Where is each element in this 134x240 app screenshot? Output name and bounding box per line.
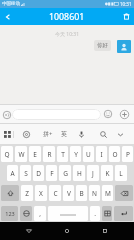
staticText: 1008601 [49, 11, 85, 23]
staticText: 你好 [97, 42, 108, 49]
button[interactable]: Delete [118, 8, 134, 25]
staticText: W [18, 150, 25, 159]
staticText: P [126, 150, 130, 159]
staticText: Q [4, 150, 10, 159]
button[interactable]: A [7, 165, 18, 181]
button[interactable]: More [118, 108, 131, 121]
staticText: 10:31 [120, 1, 132, 7]
button[interactable]: Symbols [102, 206, 112, 221]
button[interactable]: U [83, 146, 94, 162]
button[interactable]: E [29, 146, 41, 162]
button[interactable] [12, 109, 101, 120]
button[interactable]: 拼+ [40, 127, 56, 141]
staticText: Z [25, 189, 29, 198]
button[interactable]: grid [1, 128, 13, 140]
button[interactable]: 英 [58, 127, 70, 141]
staticText: 英 [61, 130, 67, 138]
button[interactable]: R [43, 146, 55, 162]
staticText: 中国移动 [2, 1, 20, 7]
button[interactable]: 123 [1, 206, 18, 221]
staticText: . [94, 209, 96, 218]
staticText: D [36, 169, 41, 178]
button[interactable]: Shift [1, 185, 19, 201]
button[interactable]: Recents [96, 222, 114, 240]
staticText: G [63, 169, 68, 178]
button[interactable]: . [90, 206, 100, 221]
button[interactable]: Voice input [1, 109, 12, 120]
staticText: V [67, 189, 71, 198]
button[interactable]: O [109, 146, 120, 162]
staticText: 今天 10:31 [55, 31, 80, 38]
button[interactable]: M [102, 185, 113, 201]
button[interactable]: Q [1, 146, 13, 162]
button[interactable]: W [15, 146, 27, 162]
button[interactable]: V [63, 185, 74, 201]
button[interactable]: down [114, 128, 126, 140]
staticText: U [86, 150, 91, 159]
button[interactable]: Emoji [102, 108, 114, 120]
staticText: B [79, 189, 84, 198]
staticText: E [33, 150, 37, 159]
button[interactable]: I [96, 146, 107, 162]
staticText: N [92, 189, 97, 198]
button[interactable]: L [115, 165, 127, 181]
staticText: , [39, 209, 41, 218]
button[interactable]: settings [20, 128, 32, 140]
staticText: J [92, 169, 94, 178]
button[interactable]: K [101, 165, 113, 181]
button[interactable]: H [73, 165, 85, 181]
button[interactable]: D [33, 165, 44, 181]
staticText: A [10, 169, 15, 178]
button[interactable]: B [76, 185, 87, 201]
button[interactable]: Enter [114, 206, 133, 221]
staticText: K [105, 169, 110, 178]
staticText: Y [74, 150, 78, 159]
button[interactable]: Y [70, 146, 81, 162]
button[interactable]: X [35, 185, 47, 201]
staticText: O [112, 150, 118, 159]
staticText: M [105, 189, 111, 198]
button[interactable]: Back [0, 8, 16, 25]
staticText: T [61, 150, 65, 159]
staticText: X [39, 189, 43, 198]
button[interactable]: P [122, 146, 133, 162]
button[interactable]: search [97, 128, 109, 140]
button[interactable]: T [57, 146, 68, 162]
button[interactable]: Globe [20, 206, 32, 221]
button[interactable]: S [20, 165, 31, 181]
button[interactable]: Home [58, 222, 76, 240]
staticText: S [24, 169, 28, 178]
staticText: L [119, 169, 123, 178]
button[interactable]: Z [21, 185, 33, 201]
button[interactable]: mic [75, 128, 87, 140]
button[interactable] [48, 206, 88, 221]
button[interactable]: Back [20, 222, 38, 240]
button[interactable]: , [34, 206, 46, 221]
button[interactable]: N [89, 185, 100, 201]
button[interactable]: Backspace [115, 185, 133, 201]
button[interactable]: C [49, 185, 61, 201]
staticText: R [47, 150, 52, 159]
staticText: I [100, 150, 103, 159]
staticText: 拼+ [43, 130, 53, 138]
button[interactable]: G [59, 165, 71, 181]
button[interactable]: J [87, 165, 99, 181]
staticText: 123 [5, 210, 15, 217]
staticText: F [50, 169, 54, 178]
staticText: H [77, 169, 82, 178]
staticText: C [53, 189, 58, 198]
button[interactable]: F [46, 165, 57, 181]
